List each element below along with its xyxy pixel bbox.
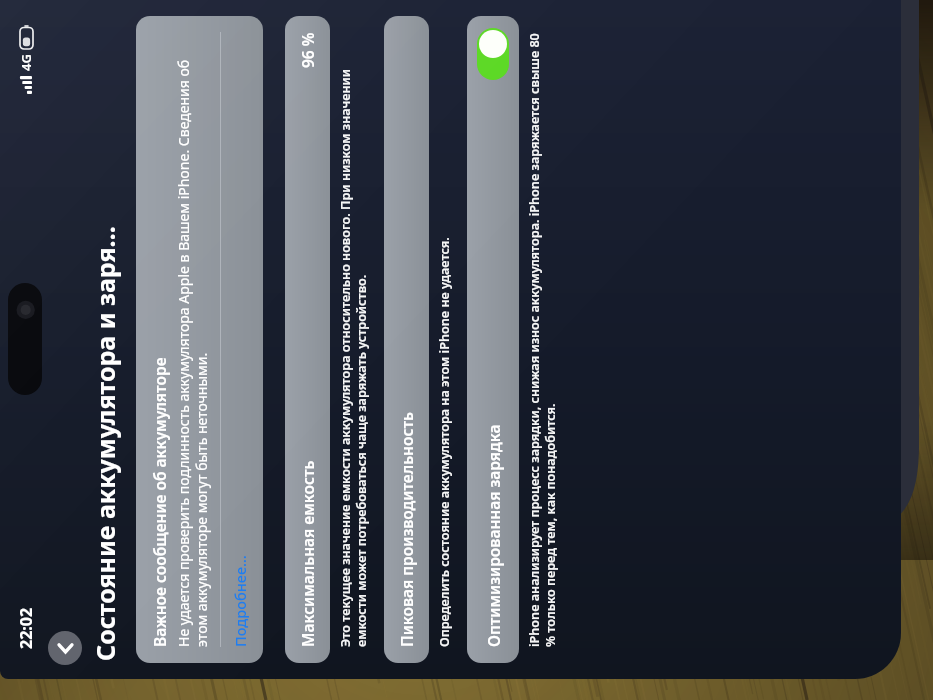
staticText: Оптимизированная зарядка	[483, 424, 504, 647]
staticText: Важное сообщение об аккумуляторе	[149, 357, 170, 647]
staticText: 22:02	[15, 607, 37, 649]
staticText: 4G	[17, 54, 35, 71]
staticText: 96 %	[297, 32, 318, 68]
button[interactable]: Назад	[48, 631, 82, 665]
staticText: Определить состояние аккумулятора на это…	[436, 237, 453, 647]
staticText: Не удается проверить подлинность аккумул…	[174, 32, 211, 647]
staticText: Это текущее значение емкости аккумулятор…	[337, 28, 370, 647]
button[interactable]: Подробнее…	[230, 555, 250, 647]
button[interactable]: Максимальная емкость	[285, 16, 330, 663]
staticText: Подробнее…	[230, 555, 250, 647]
staticText: Максимальная емкость	[297, 460, 318, 647]
staticText: Состояние аккумулятора и заря…	[88, 226, 122, 661]
staticText: iPhone анализирует процесс зарядки, сниж…	[526, 28, 559, 647]
button[interactable]: Оптимизированная зарядка, включено	[477, 28, 509, 80]
staticText: Пиковая производительность	[396, 412, 417, 647]
button[interactable]: Пиковая производительность	[384, 16, 429, 663]
